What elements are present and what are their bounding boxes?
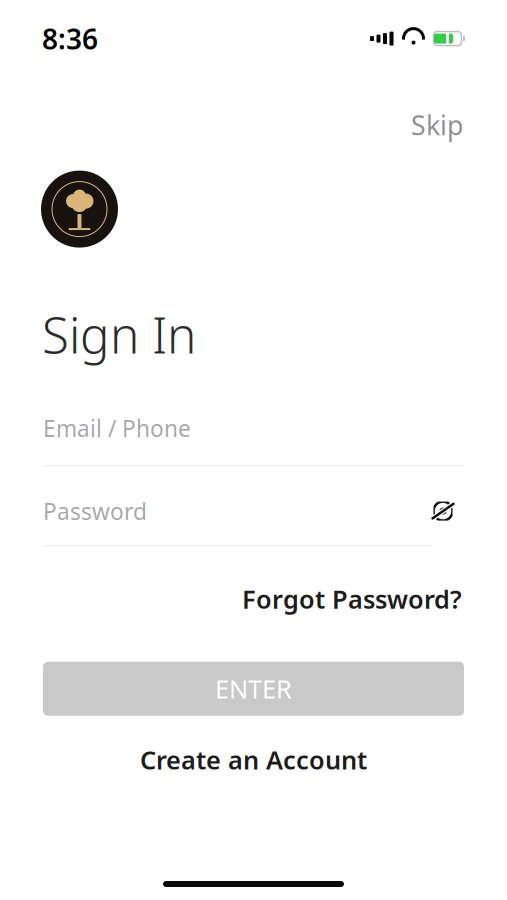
staticText: Create an Account bbox=[140, 743, 367, 776]
staticText: ENTER bbox=[215, 672, 292, 705]
button[interactable]: Create an Account bbox=[126, 735, 381, 784]
staticText: 8:36 bbox=[42, 20, 98, 57]
staticText: Forgot Password? bbox=[242, 582, 462, 616]
staticText: Skip bbox=[411, 107, 463, 143]
staticText: Password bbox=[43, 496, 147, 526]
staticText: Email / Phone bbox=[43, 413, 191, 443]
button[interactable]: ENTER bbox=[43, 662, 464, 716]
button[interactable]: Show password bbox=[422, 494, 464, 528]
button[interactable]: Skip bbox=[401, 101, 473, 149]
button[interactable]: Forgot Password? bbox=[242, 576, 462, 622]
staticText: Sign In bbox=[42, 302, 196, 367]
